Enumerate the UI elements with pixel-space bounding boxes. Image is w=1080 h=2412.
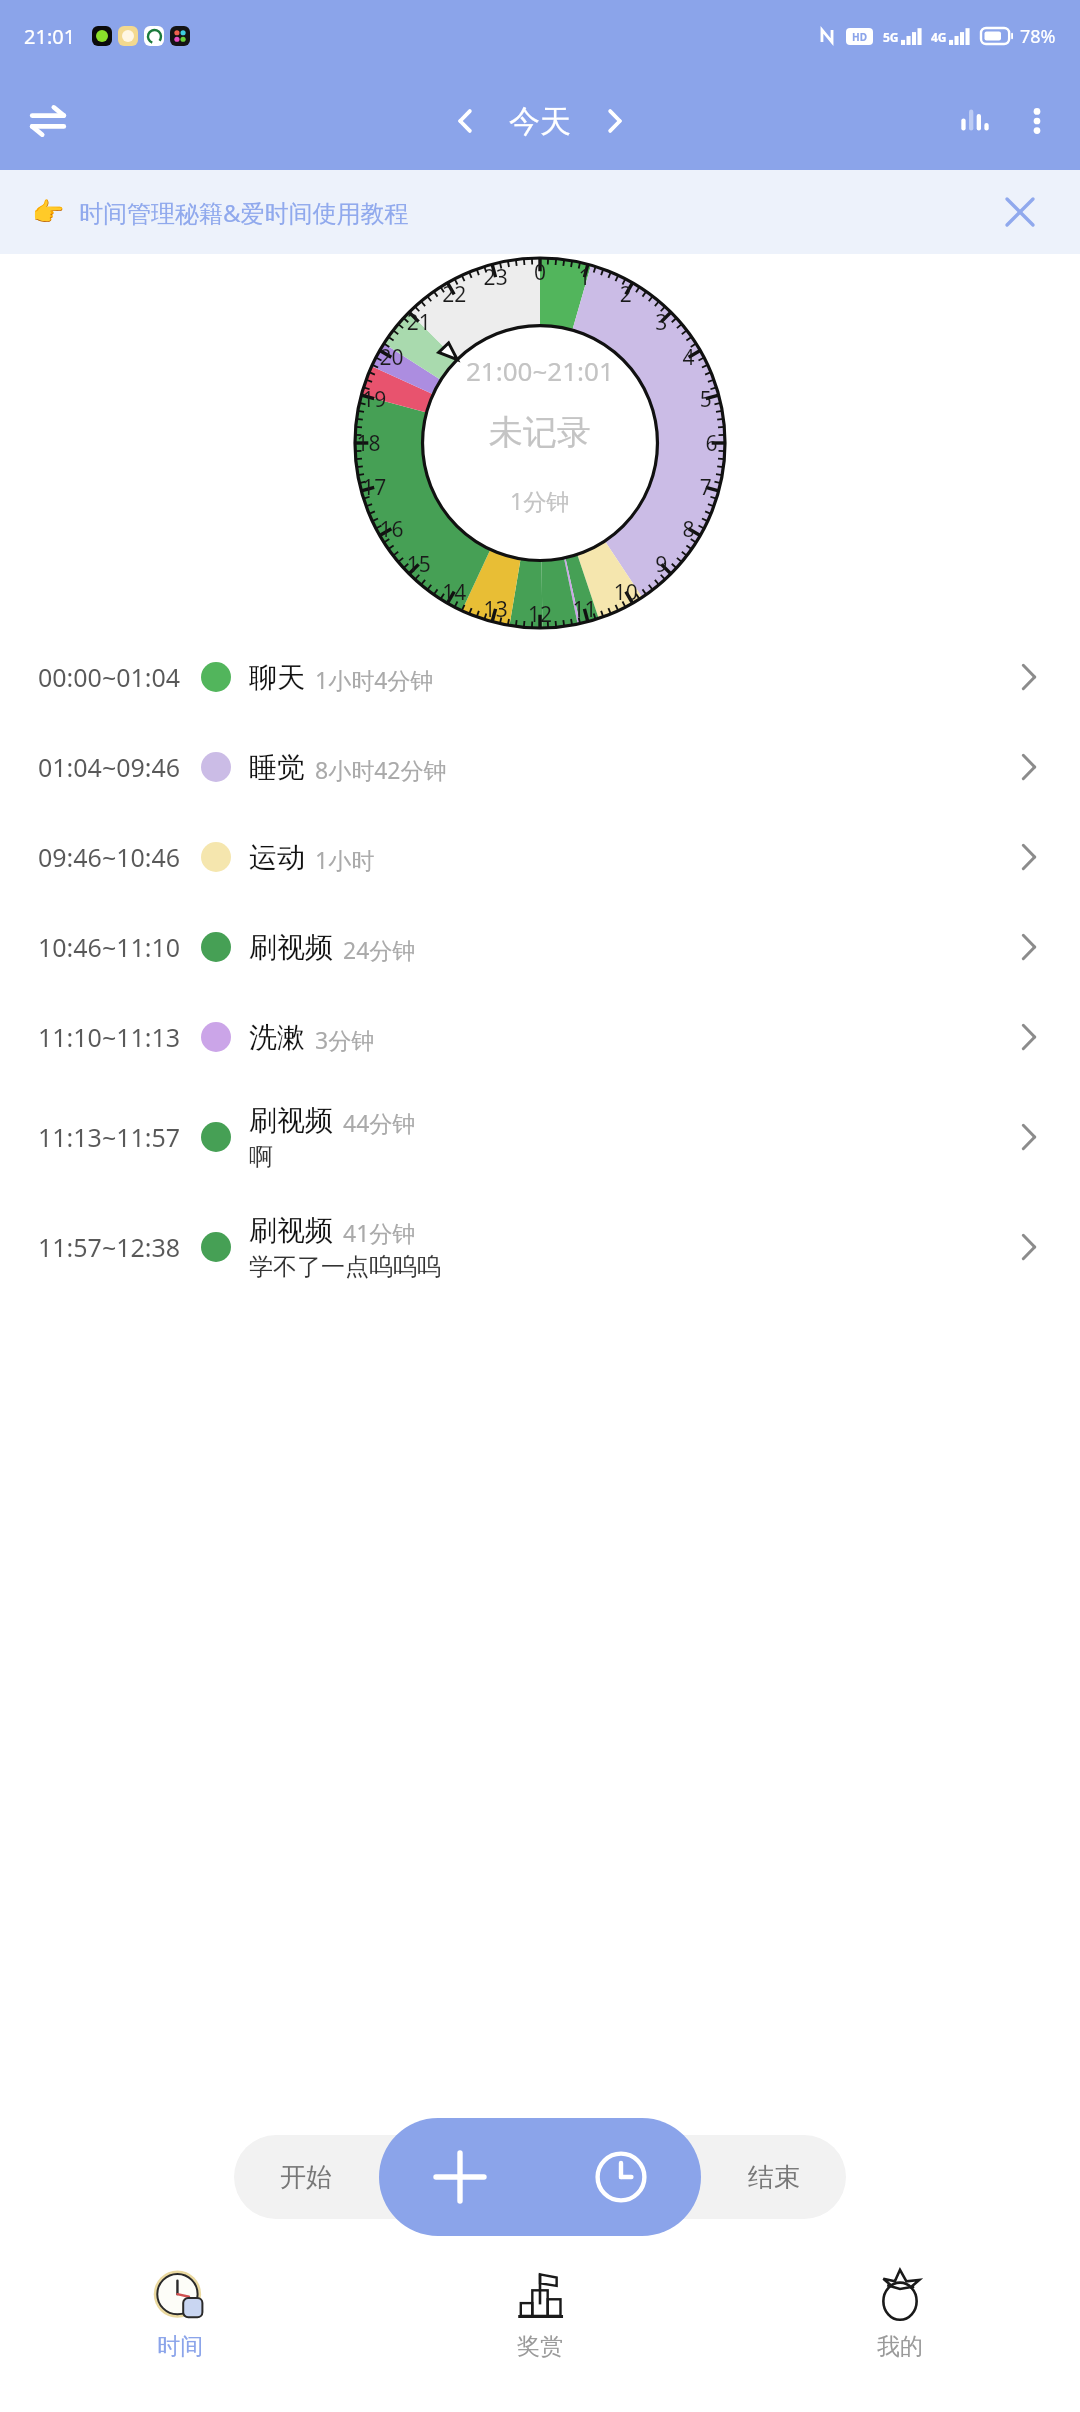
button[interactable]: Close banner — [992, 184, 1048, 240]
staticText: 8小时42分钟 — [315, 754, 447, 785]
staticText: 运动 — [249, 840, 305, 875]
staticText: HD — [852, 30, 867, 44]
staticText: 👉 — [32, 197, 65, 227]
staticText: 今天 — [509, 102, 571, 141]
staticText: 01:04~09:46 — [38, 750, 181, 784]
staticText: 刷视频 — [249, 1213, 333, 1248]
staticText: 刷视频 — [249, 930, 333, 965]
staticText: 21:01 — [24, 23, 76, 50]
staticText: 开始 — [280, 2161, 332, 2194]
staticText: 78% — [1020, 24, 1056, 49]
button[interactable]: 10:46~11:10 — [0, 902, 1080, 992]
staticText: 41分钟 — [343, 1217, 416, 1248]
staticText: 00:00~01:04 — [38, 660, 181, 694]
staticText: 睡觉 — [249, 750, 305, 785]
staticText: 洗漱 — [249, 1020, 305, 1055]
button[interactable]: 00:00~01:04 — [0, 632, 1080, 722]
button[interactable]: 今天 — [509, 102, 571, 141]
staticText: 奖赏 — [517, 2332, 563, 2361]
staticText: 刷视频 — [249, 1103, 333, 1138]
button[interactable]: 时间 — [0, 2250, 360, 2412]
staticText: 3分钟 — [315, 1024, 375, 1055]
staticText: 时间 — [157, 2332, 203, 2361]
staticText: 啊 — [249, 1142, 273, 1172]
button[interactable]: 奖赏 — [360, 2250, 720, 2412]
staticText: 11:57~12:38 — [38, 1230, 181, 1264]
staticText: 我的 — [877, 2332, 923, 2361]
button[interactable]: Statistics — [944, 90, 1006, 152]
staticText: 1小时4分钟 — [315, 664, 434, 695]
button[interactable]: 09:46~10:46 — [0, 812, 1080, 902]
button[interactable]: 11:10~11:13 — [0, 992, 1080, 1082]
button[interactable]: Add record — [379, 2118, 540, 2236]
staticText: 1小时 — [315, 844, 375, 875]
staticText: 结束 — [748, 2161, 800, 2194]
staticText: 聊天 — [249, 660, 305, 695]
button[interactable]: Switch view — [18, 91, 78, 151]
button[interactable]: More options — [1006, 90, 1068, 152]
staticText: 44分钟 — [343, 1107, 416, 1138]
staticText: 4G — [931, 29, 947, 45]
staticText: 学不了一点呜呜呜 — [249, 1252, 441, 1282]
staticText: 10:46~11:10 — [38, 930, 181, 964]
button[interactable]: Previous day — [437, 93, 493, 149]
button[interactable]: 我的 — [720, 2250, 1080, 2412]
staticText: 11:13~11:57 — [38, 1120, 181, 1154]
staticText: 时间管理秘籍&爱时间使用教程 — [79, 196, 409, 229]
button[interactable]: 11:13~11:57 — [0, 1082, 1080, 1192]
button[interactable]: 开始 — [280, 2135, 332, 2219]
staticText: 11:10~11:13 — [38, 1020, 181, 1054]
staticText: 09:46~10:46 — [38, 840, 181, 874]
staticText: 5G — [883, 29, 899, 45]
button[interactable]: 结束 — [748, 2135, 800, 2219]
staticText: 24分钟 — [343, 934, 416, 965]
button[interactable]: Timer — [540, 2118, 701, 2236]
button[interactable]: 01:04~09:46 — [0, 722, 1080, 812]
button[interactable]: Next day — [587, 93, 643, 149]
button[interactable]: 11:57~12:38 — [0, 1192, 1080, 1302]
button[interactable]: 👉 — [0, 170, 1080, 254]
